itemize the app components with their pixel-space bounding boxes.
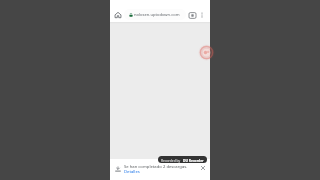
staticText: DU Recorder xyxy=(183,158,204,162)
button[interactable]: Close xyxy=(198,163,207,172)
staticText: Recorded by xyxy=(161,158,181,162)
button[interactable]: Switch tabs xyxy=(187,10,197,20)
staticText: nolosen.uptodown.com xyxy=(134,12,180,18)
button[interactable]: More options xyxy=(197,10,207,20)
button[interactable]: Home xyxy=(112,9,123,20)
staticText: Se han completado 2 descargas. xyxy=(124,164,188,170)
button[interactable]: Detalles xyxy=(124,169,140,175)
button[interactable]: Screen recorder xyxy=(197,42,214,59)
button[interactable]: nolosen.uptodown.com xyxy=(124,9,186,20)
